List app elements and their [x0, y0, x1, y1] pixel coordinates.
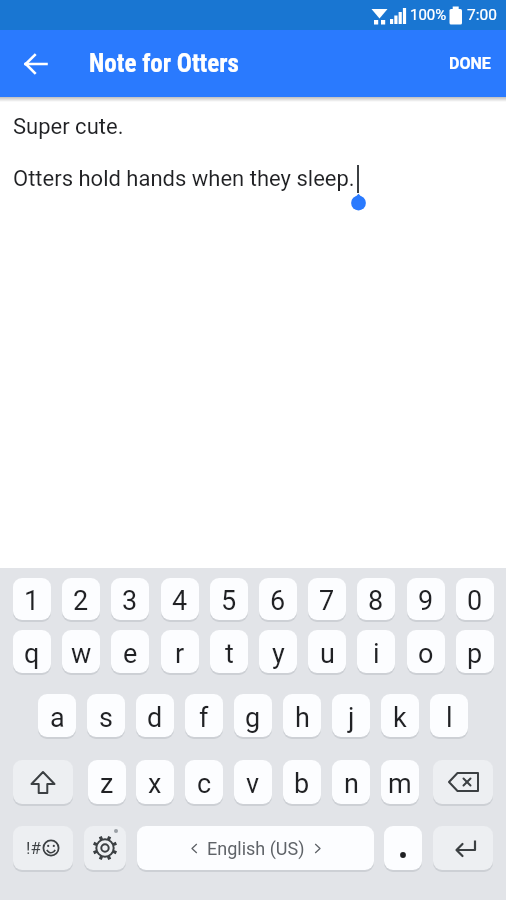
button[interactable]: d: [136, 694, 174, 737]
staticText: f: [199, 702, 209, 734]
staticText: 8: [368, 585, 384, 617]
button[interactable]: o: [407, 630, 445, 673]
button[interactable]: 4: [161, 578, 199, 620]
staticText: Super cute.: [13, 114, 124, 140]
button[interactable]: s: [87, 694, 125, 737]
button[interactable]: f: [185, 694, 223, 737]
staticText: 4: [172, 585, 188, 617]
button[interactable]: English (US): [137, 826, 374, 870]
button[interactable]: 2: [62, 578, 100, 620]
staticText: h: [295, 702, 310, 734]
button[interactable]: q: [13, 630, 51, 673]
button[interactable]: 6: [259, 578, 297, 620]
staticText: e: [123, 638, 138, 670]
staticText: z: [100, 768, 114, 800]
staticText: 9: [418, 585, 434, 617]
staticText: k: [393, 702, 407, 734]
staticText: DONE: [449, 54, 491, 73]
staticText: v: [246, 768, 260, 800]
button[interactable]: m: [381, 760, 419, 804]
staticText: 1: [24, 585, 40, 617]
button[interactable]: j: [332, 694, 370, 737]
button[interactable]: [13, 760, 73, 804]
button[interactable]: [384, 826, 422, 870]
staticText: g: [245, 702, 261, 734]
button[interactable]: k: [381, 694, 419, 737]
staticText: w: [71, 638, 92, 670]
button[interactable]: [433, 760, 493, 804]
staticText: c: [197, 768, 212, 800]
staticText: 7:00: [467, 6, 497, 24]
staticText: y: [272, 638, 285, 670]
button[interactable]: x: [136, 760, 174, 804]
button[interactable]: DONE: [436, 40, 504, 87]
staticText: !#: [26, 838, 41, 858]
staticText: 2: [73, 585, 89, 617]
button[interactable]: 0: [456, 578, 494, 620]
button[interactable]: a: [38, 694, 76, 737]
staticText: n: [344, 768, 359, 800]
staticText: q: [24, 638, 40, 670]
staticText: s: [99, 702, 113, 734]
button[interactable]: z: [88, 760, 126, 804]
staticText: 0: [467, 585, 483, 617]
staticText: 6: [270, 585, 286, 617]
button[interactable]: e: [111, 630, 149, 673]
button[interactable]: w: [62, 630, 100, 673]
button[interactable]: h: [283, 694, 321, 737]
button[interactable]: p: [456, 630, 494, 673]
button[interactable]: l: [430, 694, 468, 737]
button[interactable]: u: [308, 630, 346, 673]
button[interactable]: [12, 40, 59, 87]
button[interactable]: !#: [13, 826, 73, 870]
button[interactable]: y: [259, 630, 297, 673]
button[interactable]: [84, 826, 126, 870]
staticText: 100%: [410, 6, 447, 24]
staticText: Note for Otters: [89, 49, 239, 78]
button[interactable]: g: [234, 694, 272, 737]
button[interactable]: 7: [308, 578, 346, 620]
button[interactable]: r: [161, 630, 199, 673]
staticText: o: [418, 638, 434, 670]
staticText: English (US): [207, 838, 305, 859]
staticText: b: [294, 768, 310, 800]
staticText: 3: [122, 585, 138, 617]
staticText: Otters hold hands when they sleep.: [13, 166, 355, 192]
staticText: i: [373, 638, 380, 670]
staticText: m: [388, 768, 412, 800]
staticText: 7: [319, 585, 335, 617]
staticText: a: [50, 702, 65, 734]
button[interactable]: 9: [407, 578, 445, 620]
button[interactable]: 3: [111, 578, 149, 620]
button[interactable]: t: [210, 630, 248, 673]
staticText: p: [467, 638, 483, 670]
staticText: x: [148, 768, 162, 800]
staticText: r: [175, 638, 185, 670]
staticText: t: [225, 638, 234, 670]
staticText: u: [320, 638, 335, 670]
button[interactable]: 5: [210, 578, 248, 620]
button[interactable]: 1: [13, 578, 51, 620]
button[interactable]: b: [283, 760, 321, 804]
staticText: 5: [221, 585, 237, 617]
button[interactable]: [433, 826, 493, 870]
button[interactable]: 8: [357, 578, 395, 620]
button[interactable]: c: [185, 760, 223, 804]
button[interactable]: v: [234, 760, 272, 804]
staticText: l: [446, 702, 453, 734]
button[interactable]: n: [332, 760, 370, 804]
button[interactable]: i: [357, 630, 395, 673]
staticText: d: [147, 702, 163, 734]
staticText: j: [348, 702, 355, 734]
